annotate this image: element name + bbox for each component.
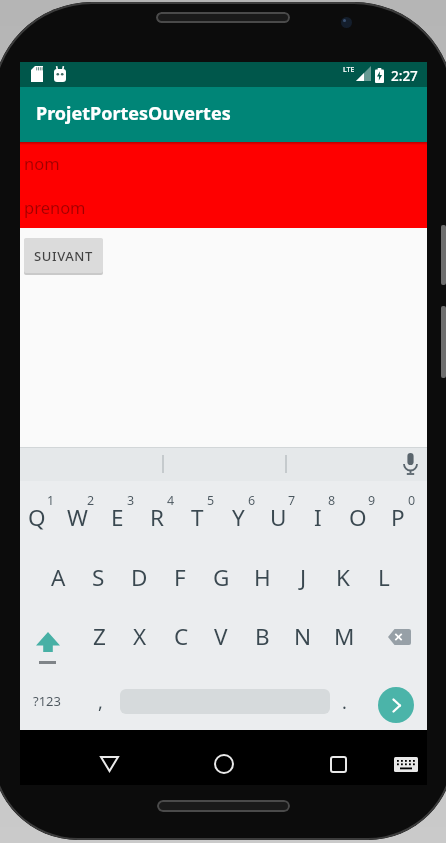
staticText: P [391, 502, 405, 533]
staticText: 7 [288, 492, 296, 509]
button[interactable]: . [324, 682, 364, 722]
button[interactable] [396, 450, 424, 478]
staticText: LTE [343, 65, 355, 75]
staticText: ?123 [33, 692, 61, 710]
button[interactable]: R [137, 497, 177, 537]
staticText: 5 [207, 492, 215, 509]
staticText: M [334, 621, 355, 652]
button[interactable]: I [298, 497, 338, 537]
button[interactable]: D [119, 557, 159, 597]
button[interactable] [24, 618, 72, 666]
staticText: X [133, 621, 147, 652]
button[interactable]: F [160, 557, 200, 597]
button[interactable]: prenom [20, 185, 427, 228]
button[interactable]: O [338, 497, 378, 537]
button[interactable]: V [201, 616, 241, 656]
button[interactable] [317, 744, 359, 784]
staticText: ProjetPortesOuvertes [36, 101, 231, 126]
staticText: G [213, 562, 230, 593]
staticText: Y [232, 502, 245, 533]
button[interactable] [386, 747, 426, 781]
button[interactable]: X [120, 616, 160, 656]
button[interactable]: Q [17, 497, 57, 537]
staticText: H [254, 562, 271, 593]
staticText: N [294, 621, 312, 652]
button[interactable]: A [38, 557, 78, 597]
staticText: C [174, 621, 189, 652]
button[interactable]: , [80, 682, 120, 722]
button[interactable]: C [161, 616, 201, 656]
button[interactable] [203, 744, 245, 784]
staticText: SUIVANT [34, 247, 93, 265]
staticText: J [300, 562, 307, 593]
button[interactable]: T [177, 497, 217, 537]
staticText: 1 [47, 492, 55, 509]
staticText: R [150, 502, 164, 533]
staticText: E [111, 502, 124, 533]
staticText: 2:27 [391, 67, 418, 85]
staticText: . [342, 690, 347, 715]
staticText: D [131, 562, 148, 593]
staticText: W [67, 502, 88, 533]
button[interactable]: G [201, 557, 241, 597]
button[interactable]: M [324, 616, 364, 656]
staticText: 2 [87, 492, 95, 509]
staticText: B [255, 621, 270, 652]
staticText: , [98, 690, 103, 715]
button[interactable]: nom [20, 145, 427, 185]
button[interactable]: Y [218, 497, 258, 537]
staticText: 9 [368, 492, 376, 509]
staticText: S [92, 562, 105, 593]
button[interactable]: S [78, 557, 118, 597]
staticText: L [378, 562, 390, 593]
staticText: I [314, 502, 322, 533]
staticText: 0 [408, 492, 416, 509]
button[interactable]: P [378, 497, 418, 537]
staticText: prenom [24, 196, 86, 218]
staticText: 4 [167, 492, 175, 509]
staticText: K [336, 562, 350, 593]
staticText: F [174, 562, 186, 593]
staticText: V [214, 621, 228, 652]
button[interactable] [88, 744, 130, 784]
button[interactable] [375, 613, 423, 661]
button[interactable]: K [323, 557, 363, 597]
button[interactable]: W [57, 497, 97, 537]
button[interactable]: E [97, 497, 137, 537]
staticText: 3 [127, 492, 135, 509]
button[interactable]: L [364, 557, 404, 597]
staticText: Z [93, 621, 106, 652]
staticText: O [349, 502, 367, 533]
staticText: 6 [248, 492, 256, 509]
button[interactable]: N [283, 616, 323, 656]
staticText: A [51, 562, 66, 593]
button[interactable]: ?123 [27, 681, 67, 721]
button[interactable]: H [242, 557, 282, 597]
button[interactable]: U [258, 497, 298, 537]
staticText: nom [24, 152, 60, 174]
button[interactable]: J [283, 557, 323, 597]
staticText: Q [28, 502, 46, 533]
button[interactable]: B [242, 616, 282, 656]
button[interactable]: SUIVANT [24, 238, 103, 273]
staticText: T [191, 502, 204, 533]
staticText: 8 [328, 492, 336, 509]
button[interactable]: Z [79, 616, 119, 656]
staticText: U [270, 502, 287, 533]
button[interactable] [378, 687, 414, 723]
